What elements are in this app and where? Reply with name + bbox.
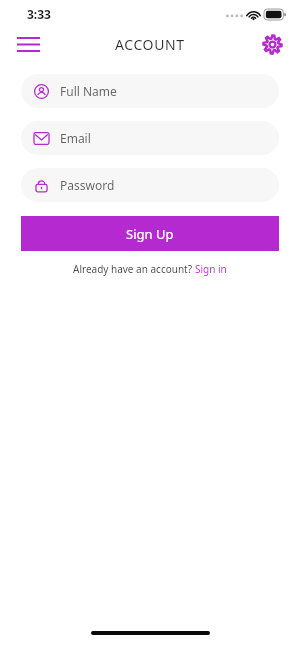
staticText: Full Name: [60, 83, 117, 99]
button[interactable]: Sign in: [195, 262, 227, 276]
staticText: Sign Up: [126, 225, 174, 243]
button[interactable]: Full Name: [21, 74, 279, 108]
staticText: 3:33: [27, 6, 51, 22]
button[interactable]: Password: [21, 168, 279, 202]
button[interactable]: Menu: [8, 28, 48, 61]
staticText: Already have an account?: [73, 262, 195, 276]
button[interactable]: Settings: [252, 28, 292, 61]
staticText: Password: [60, 177, 115, 193]
button[interactable]: Sign Up: [21, 216, 279, 251]
button[interactable]: Email: [21, 121, 279, 155]
staticText: Sign in: [195, 262, 227, 276]
staticText: ACCOUNT: [115, 35, 185, 54]
staticText: Email: [60, 130, 91, 146]
